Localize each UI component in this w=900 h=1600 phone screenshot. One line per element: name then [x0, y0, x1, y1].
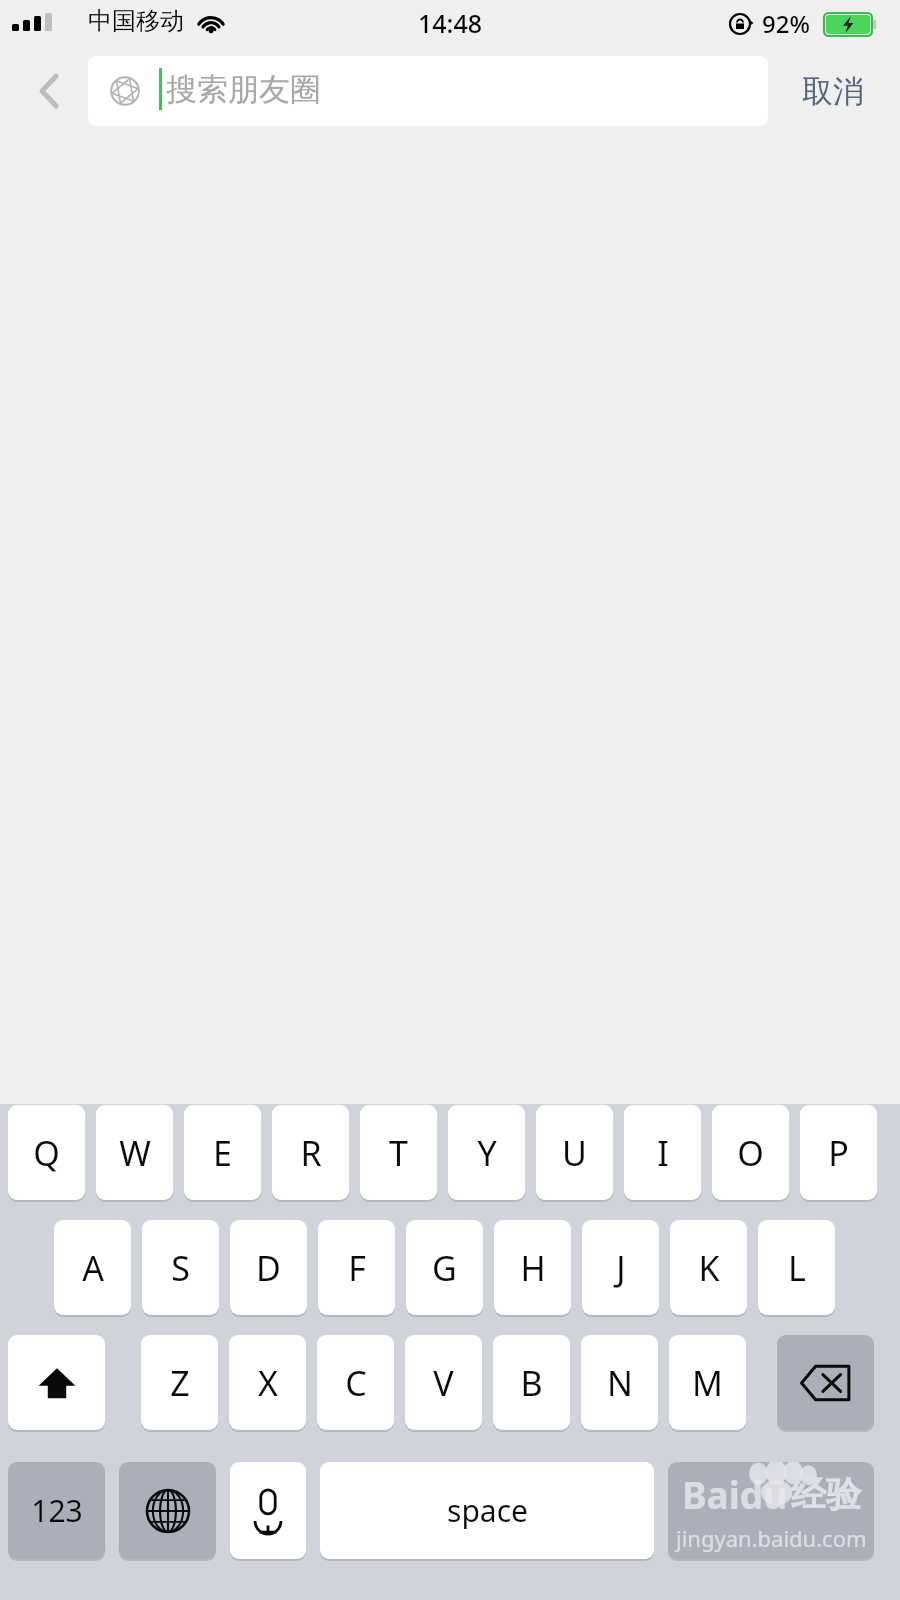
staticText: 经验 — [791, 1472, 861, 1516]
button[interactable]: A — [54, 1220, 131, 1315]
button[interactable]: P — [800, 1105, 877, 1200]
button[interactable]: E — [184, 1105, 261, 1200]
staticText: T — [389, 1130, 408, 1176]
staticText: B — [520, 1360, 543, 1406]
staticText: A — [82, 1245, 104, 1291]
staticText: H — [520, 1245, 546, 1291]
button[interactable]: Search — [668, 1462, 874, 1559]
staticText: Z — [170, 1360, 190, 1406]
button[interactable]: H — [494, 1220, 571, 1315]
staticText: L — [788, 1245, 806, 1291]
button[interactable]: N — [581, 1335, 658, 1430]
staticText: 搜索朋友圈 — [166, 70, 321, 109]
staticText: Y — [477, 1130, 497, 1176]
button[interactable]: Y — [448, 1105, 525, 1200]
staticText: D — [256, 1245, 281, 1291]
staticText: W — [119, 1130, 151, 1176]
button[interactable]: Back — [14, 56, 80, 126]
staticText: G — [432, 1245, 457, 1291]
staticText: 14:48 — [418, 6, 483, 40]
button[interactable]: 123 — [8, 1462, 105, 1559]
staticText: space — [447, 1490, 528, 1531]
staticText: J — [616, 1245, 626, 1291]
staticText: Q — [33, 1130, 60, 1176]
staticText: F — [348, 1245, 366, 1291]
button[interactable]: O — [712, 1105, 789, 1200]
button[interactable]: U — [536, 1105, 613, 1200]
staticText: O — [737, 1130, 764, 1176]
button[interactable]: Z — [141, 1335, 218, 1430]
staticText: V — [433, 1360, 454, 1406]
button[interactable]: X — [229, 1335, 306, 1430]
button[interactable]: S — [142, 1220, 219, 1315]
staticText: U — [562, 1130, 587, 1176]
staticText: 92% — [762, 7, 810, 40]
staticText: P — [828, 1130, 849, 1176]
staticText: I — [657, 1130, 669, 1176]
button[interactable]: F — [318, 1220, 395, 1315]
staticText: X — [258, 1360, 278, 1406]
button[interactable]: Q — [8, 1105, 85, 1200]
button[interactable]: 搜索朋友圈 — [88, 56, 768, 126]
button[interactable]: L — [758, 1220, 835, 1315]
button[interactable]: Backspace — [777, 1335, 874, 1430]
button[interactable]: Change keyboard — [119, 1462, 216, 1559]
button[interactable]: K — [670, 1220, 747, 1315]
staticText: 取消 — [802, 72, 864, 111]
button[interactable]: Shift — [8, 1335, 105, 1430]
staticText: M — [692, 1360, 723, 1406]
staticText: C — [345, 1360, 367, 1406]
button[interactable]: D — [230, 1220, 307, 1315]
staticText: K — [698, 1245, 720, 1291]
button[interactable]: J — [582, 1220, 659, 1315]
button[interactable]: 取消 — [778, 56, 888, 126]
button[interactable]: B — [493, 1335, 570, 1430]
staticText: 123 — [31, 1490, 83, 1531]
button[interactable]: W — [96, 1105, 173, 1200]
button[interactable]: C — [317, 1335, 394, 1430]
button[interactable]: M — [669, 1335, 746, 1430]
button[interactable]: R — [272, 1105, 349, 1200]
button[interactable]: T — [360, 1105, 437, 1200]
button[interactable]: I — [624, 1105, 701, 1200]
staticText: N — [607, 1360, 633, 1406]
staticText: 中国移动 — [88, 6, 184, 36]
button[interactable]: G — [406, 1220, 483, 1315]
staticText: jingyan.baidu.com — [676, 1523, 867, 1553]
button[interactable]: space — [320, 1462, 654, 1559]
staticText: S — [171, 1245, 190, 1291]
staticText: Baidu — [682, 1469, 788, 1519]
button[interactable]: Voice input — [230, 1462, 306, 1559]
button[interactable]: V — [405, 1335, 482, 1430]
staticText: E — [213, 1130, 232, 1176]
staticText: R — [300, 1130, 322, 1176]
